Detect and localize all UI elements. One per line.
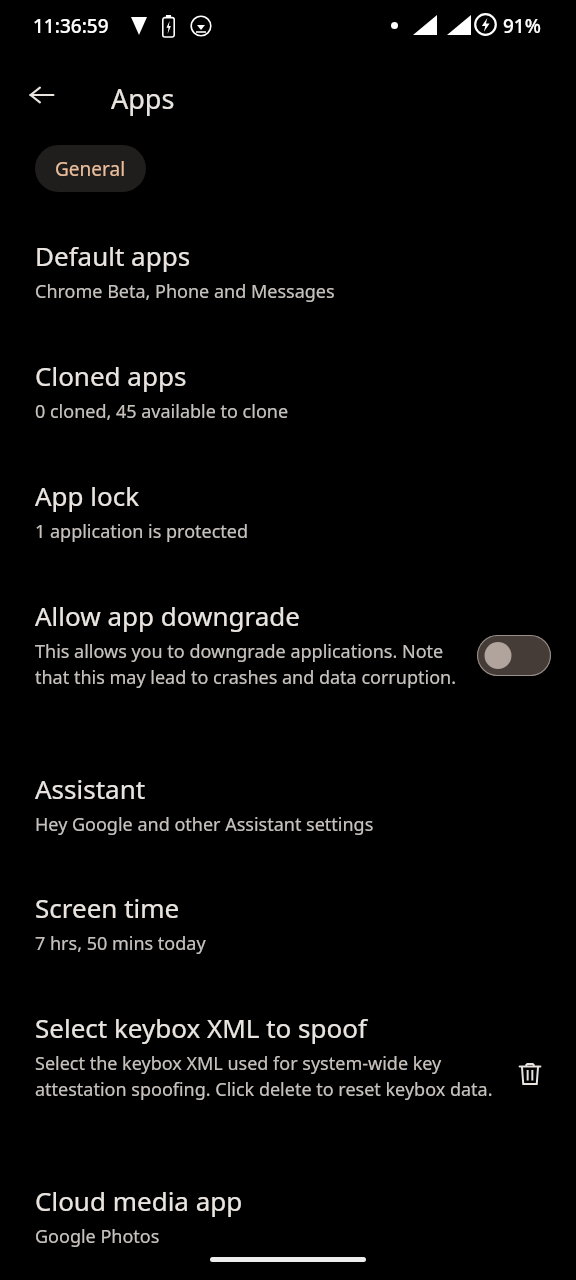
staticText: Assistant bbox=[35, 771, 146, 806]
staticText: Select keybox XML to spoof bbox=[35, 1010, 367, 1045]
button[interactable]: Select keybox XML to spoof bbox=[0, 1004, 576, 1112]
staticText: Screen time bbox=[35, 890, 180, 925]
staticText: Allow app downgrade bbox=[35, 598, 300, 633]
staticText: General bbox=[55, 156, 126, 182]
staticText: Cloned apps bbox=[35, 358, 187, 393]
button[interactable]: General bbox=[35, 145, 146, 192]
staticText: Hey Google and other Assistant settings bbox=[35, 812, 374, 837]
button[interactable]: Delete keybox data bbox=[506, 1050, 554, 1098]
staticText: 0 cloned, 45 available to clone bbox=[35, 399, 289, 424]
staticText: 1 application is protected bbox=[35, 519, 249, 544]
staticText: 91% bbox=[503, 13, 541, 39]
button[interactable]: Screen time bbox=[0, 884, 576, 966]
staticText: Select the keybox XML used for system-wi… bbox=[35, 1051, 494, 1102]
button[interactable]: Default apps bbox=[0, 232, 576, 314]
button[interactable]: Allow app downgrade bbox=[0, 592, 576, 700]
staticText: Chrome Beta, Phone and Messages bbox=[35, 279, 335, 304]
button[interactable]: Assistant bbox=[0, 765, 576, 847]
button[interactable]: App lock bbox=[0, 472, 576, 554]
staticText: Apps bbox=[111, 80, 175, 117]
button[interactable]: Back bbox=[18, 71, 66, 119]
button[interactable]: Allow app downgrade toggle bbox=[477, 635, 551, 676]
staticText: App lock bbox=[35, 478, 140, 513]
button[interactable]: Cloud media app bbox=[0, 1177, 576, 1259]
button[interactable]: Cloned apps bbox=[0, 352, 576, 434]
staticText: Google Photos bbox=[35, 1224, 160, 1249]
staticText: 7 hrs, 50 mins today bbox=[35, 931, 206, 956]
staticText: This allows you to downgrade application… bbox=[35, 639, 467, 690]
staticText: Default apps bbox=[35, 238, 191, 273]
staticText: 11:36:59 bbox=[33, 13, 109, 39]
staticText: Cloud media app bbox=[35, 1183, 243, 1218]
